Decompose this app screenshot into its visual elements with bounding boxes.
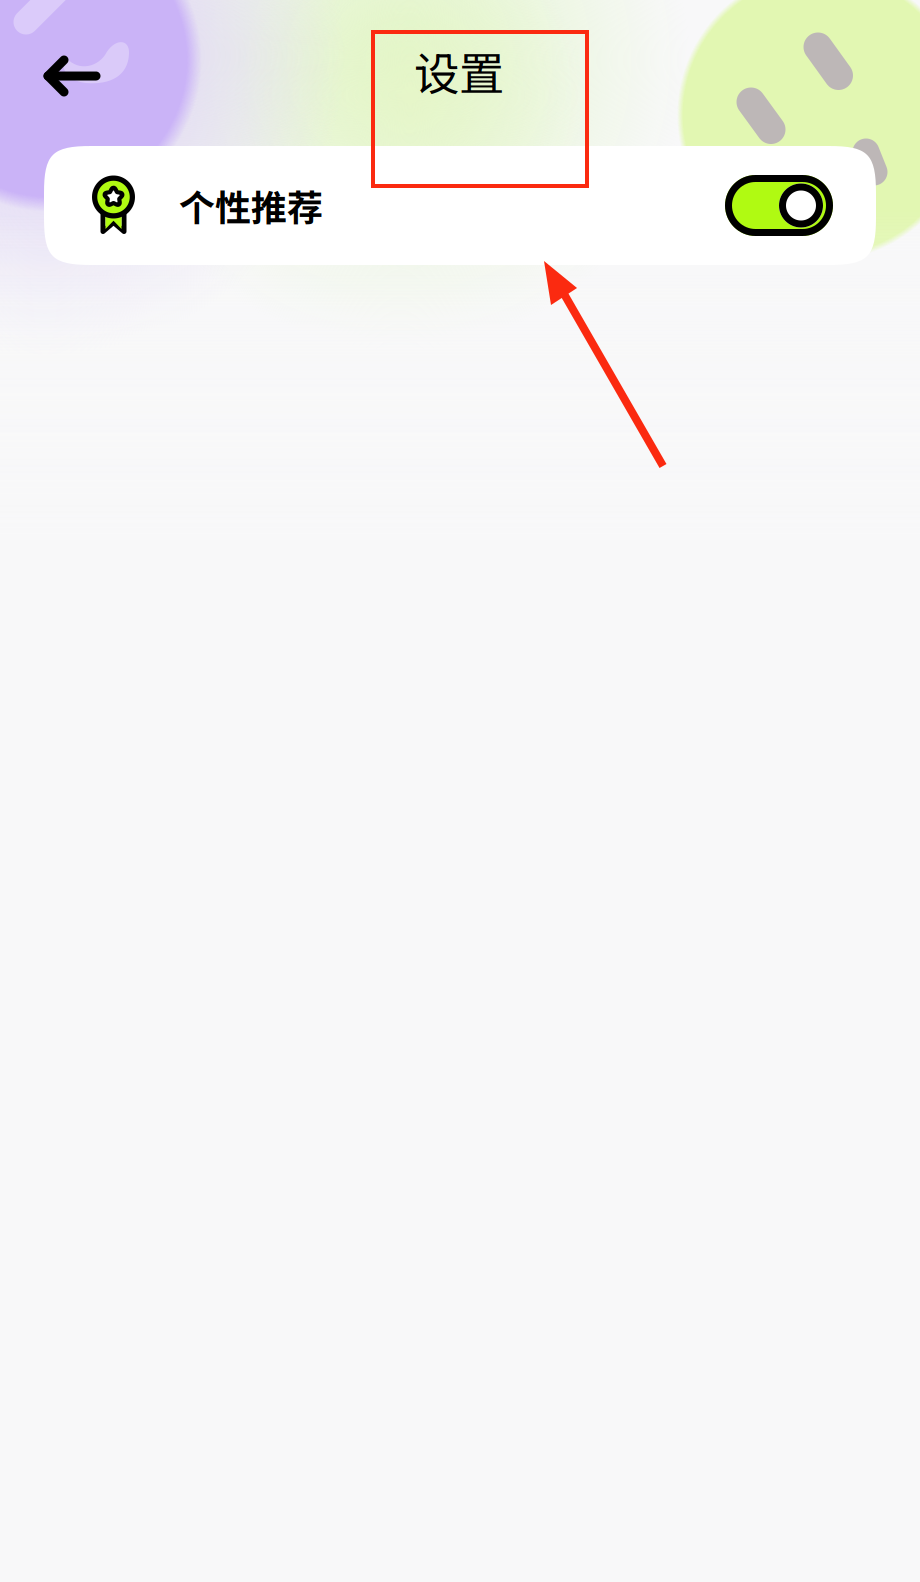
button[interactable]: Back (26, 36, 118, 116)
staticText: 设置 (414, 38, 504, 104)
staticText: 个性推荐 (179, 179, 323, 231)
button[interactable]: 个性推荐 (44, 146, 876, 265)
